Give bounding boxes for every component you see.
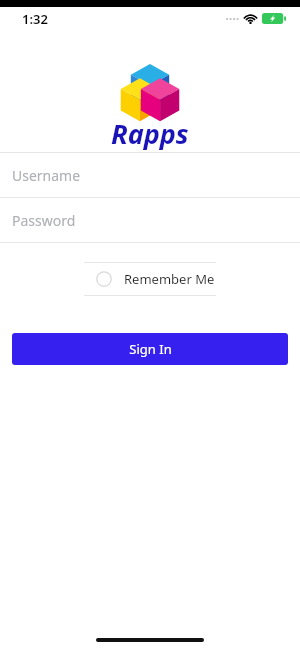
staticText: Rapps xyxy=(111,115,189,152)
button[interactable]: Sign In xyxy=(12,333,288,365)
staticText: 1:32 xyxy=(22,10,48,28)
button[interactable]: Remember Me xyxy=(84,263,216,295)
button[interactable]: Password xyxy=(0,198,300,242)
staticText: Sign In xyxy=(129,340,172,358)
staticText: Remember Me xyxy=(124,270,215,288)
button[interactable]: Username xyxy=(0,153,300,197)
staticText: Username xyxy=(12,166,81,185)
staticText: Password xyxy=(12,211,76,230)
